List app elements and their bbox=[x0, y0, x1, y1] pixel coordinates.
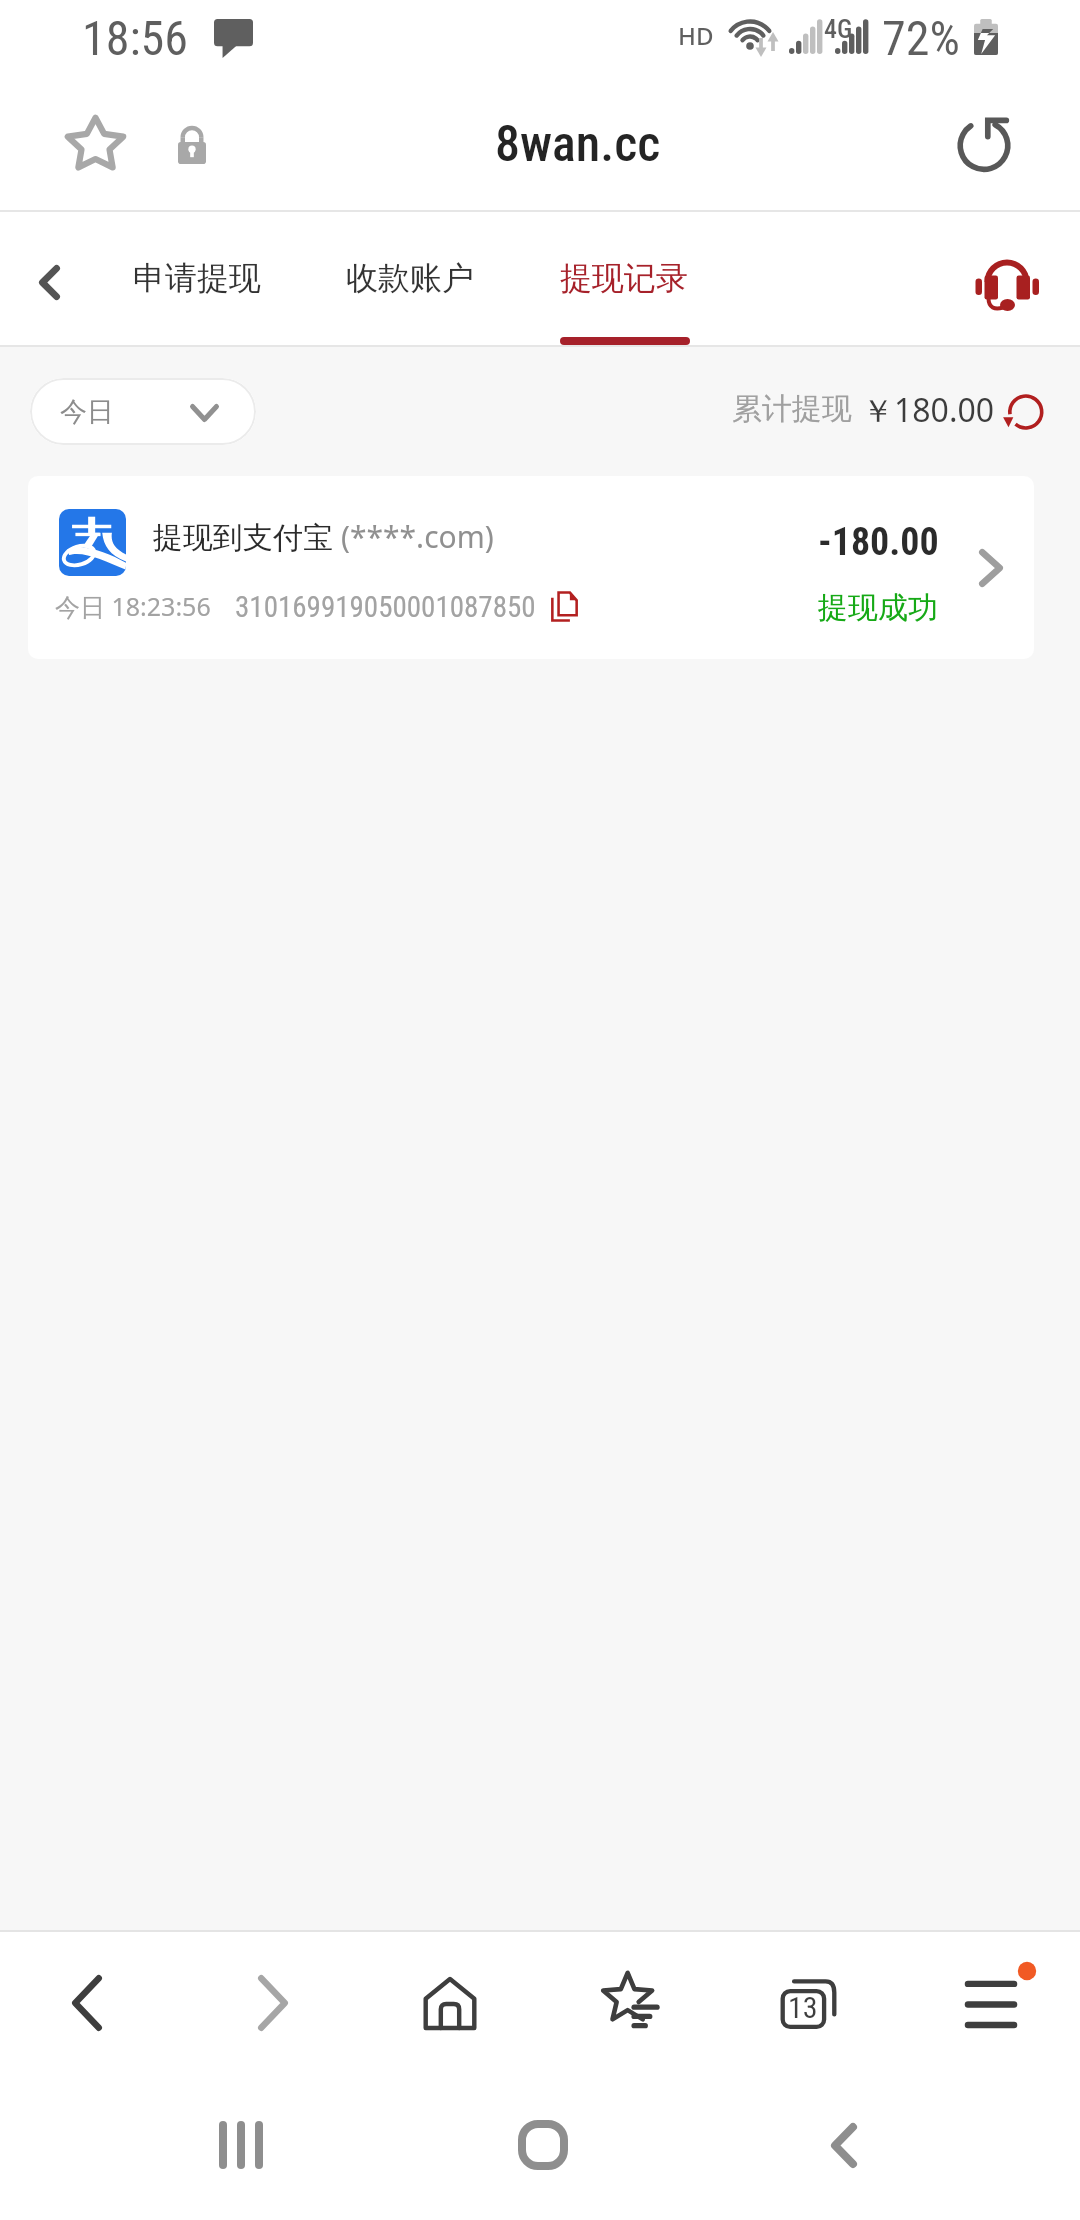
staticText: HD bbox=[678, 19, 714, 52]
staticText: 72% bbox=[882, 10, 960, 66]
button[interactable]: Menu bbox=[940, 1943, 1060, 2063]
staticText: 申请提现 bbox=[133, 258, 261, 298]
staticText: 4G bbox=[824, 14, 853, 44]
staticText: -180.00 bbox=[818, 520, 939, 565]
button[interactable]: Back bbox=[784, 2105, 904, 2185]
button[interactable]: Back bbox=[27, 1943, 147, 2063]
button[interactable]: 今日 bbox=[30, 378, 256, 445]
button[interactable]: Refresh bbox=[997, 384, 1053, 440]
button[interactable]: 收款账户 bbox=[332, 230, 488, 345]
staticText: 今日 18:23:56 bbox=[55, 589, 211, 623]
button[interactable]: Copy bbox=[536, 578, 592, 634]
staticText: 310169919050001087850 bbox=[235, 590, 536, 624]
button[interactable]: Bookmark bbox=[58, 106, 133, 181]
button[interactable]: 申请提现 bbox=[119, 230, 275, 345]
button[interactable]: Customer service bbox=[957, 237, 1057, 329]
button[interactable]: Home bbox=[483, 2105, 603, 2185]
button[interactable]: 提现记录 bbox=[546, 230, 702, 345]
button[interactable]: Secure site bbox=[162, 110, 222, 178]
staticText: 累计提现 bbox=[732, 390, 852, 428]
staticText: 收款账户 bbox=[346, 258, 474, 298]
button[interactable]: Bookmarks bbox=[571, 1943, 691, 2063]
button[interactable]: Tabs bbox=[750, 1943, 870, 2063]
button[interactable]: 提现到支付宝 bbox=[28, 476, 1034, 659]
staticText: ￥180.00 bbox=[862, 388, 995, 432]
staticText: 提现成功 bbox=[818, 589, 938, 627]
staticText: 今日 bbox=[60, 395, 114, 429]
button[interactable]: Home bbox=[390, 1943, 510, 2063]
staticText: 8wan.cc bbox=[495, 115, 661, 174]
button[interactable]: Reload bbox=[944, 104, 1024, 184]
staticText: 提现记录 bbox=[560, 258, 688, 298]
staticText: 提现到支付宝 bbox=[153, 516, 341, 557]
staticText: (****.com) bbox=[341, 516, 494, 557]
button[interactable]: Forward bbox=[213, 1943, 333, 2063]
button[interactable]: Back bbox=[18, 244, 80, 320]
button[interactable]: Recents bbox=[181, 2105, 301, 2185]
staticText: 18:56 bbox=[82, 10, 188, 66]
staticText: 13 bbox=[788, 1990, 818, 2025]
